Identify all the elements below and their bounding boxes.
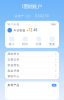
button[interactable]: 更多 [52, 84, 57, 87]
staticText: 收益报告 [7, 63, 19, 67]
button[interactable]: 交易记录 [5, 57, 59, 62]
staticText: 查看明细 [51, 23, 55, 25]
staticText: 交易记录 [7, 58, 19, 61]
button[interactable]: 更多 [45, 37, 59, 46]
staticText: 总资产（元） 8,642.50 [15, 14, 49, 18]
staticText: 更多 [49, 42, 55, 46]
staticText: 账户余额 [7, 23, 19, 26]
button[interactable]: 转入 [5, 37, 18, 46]
staticText: 风险评测 [7, 69, 19, 72]
button[interactable]: 记录 [32, 37, 45, 46]
button[interactable]: 转出 [18, 37, 32, 46]
staticText: 转入 [9, 42, 15, 46]
button[interactable]: 帮助中心 [5, 74, 59, 79]
button[interactable]: 风险评测 [5, 68, 59, 74]
staticText: 今日收益 +12.48 [14, 28, 38, 32]
staticText: 记录 [36, 42, 42, 46]
staticText: 帮助中心 [7, 75, 19, 78]
button[interactable]: 收益报告 [5, 62, 59, 68]
staticText: 理财账户 [22, 3, 42, 10]
staticText: 推荐产品 [7, 84, 19, 87]
button[interactable]: 我的持仓 [5, 51, 59, 57]
staticText: 我的持仓 [7, 52, 19, 56]
staticText: 更多 [53, 84, 55, 86]
button[interactable]: 查看明细 [50, 23, 57, 26]
staticText: 转出 [22, 42, 28, 46]
